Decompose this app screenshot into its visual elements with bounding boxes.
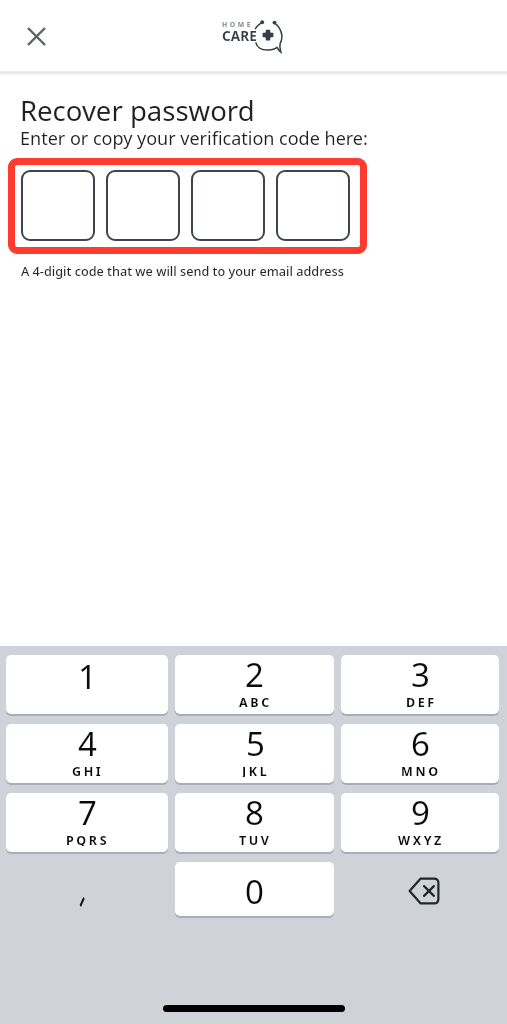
staticText: 7	[78, 793, 97, 835]
staticText: PQRS	[66, 832, 110, 846]
button[interactable]	[191, 170, 265, 241]
button[interactable]: 6	[341, 724, 499, 783]
button[interactable]	[276, 170, 350, 241]
button[interactable]: Comma	[6, 862, 168, 916]
button[interactable]	[21, 170, 95, 241]
staticText: 3	[411, 655, 430, 697]
button[interactable]: 9	[341, 793, 499, 852]
staticText: TUV	[239, 832, 272, 846]
button[interactable]: Close	[19, 19, 53, 53]
staticText: 1	[78, 655, 97, 699]
staticText: ABC	[239, 694, 272, 708]
button[interactable]: 0	[175, 862, 334, 916]
staticText: 8	[245, 793, 264, 835]
button[interactable]	[106, 170, 180, 241]
button[interactable]: 5	[175, 724, 334, 783]
button[interactable]: 4	[6, 724, 168, 783]
staticText: 0	[245, 869, 264, 914]
staticText: CARE	[222, 26, 258, 45]
staticText: 5	[246, 724, 265, 766]
button[interactable]: 1	[6, 655, 168, 714]
staticText: Recover password	[20, 92, 255, 129]
staticText: WXYZ	[398, 832, 444, 846]
staticText: JKL	[242, 763, 270, 777]
staticText: 6	[411, 724, 430, 766]
staticText: 9	[411, 793, 430, 835]
button[interactable]: 8	[175, 793, 334, 852]
staticText: A 4-digit code that we will send to your…	[21, 262, 344, 279]
staticText: 2	[245, 655, 264, 697]
staticText: 4	[78, 724, 97, 766]
staticText: Enter or copy your verification code her…	[20, 126, 368, 151]
staticText: MNO	[401, 763, 441, 777]
button[interactable]: 2	[175, 655, 334, 714]
staticText: DEF	[406, 694, 437, 708]
staticText: GHI	[72, 763, 104, 777]
button[interactable]: 7	[6, 793, 168, 852]
button[interactable]: Backspace	[341, 862, 499, 916]
button[interactable]: 3	[341, 655, 499, 714]
staticText: HOME	[222, 20, 253, 29]
